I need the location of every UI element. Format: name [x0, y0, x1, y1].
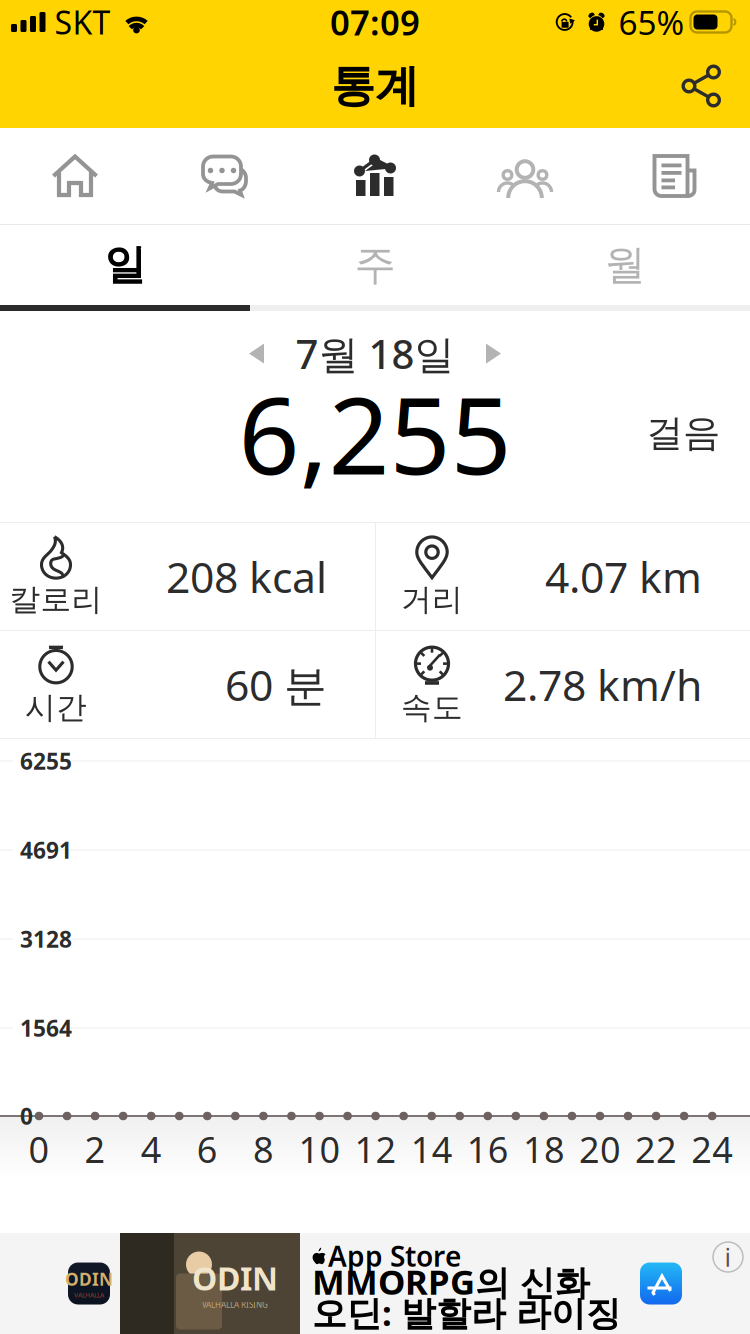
staticText: 2.78 km/h	[503, 656, 702, 713]
staticText: 16	[467, 1125, 509, 1173]
staticText: 208 kcal	[166, 548, 327, 605]
staticText: 24	[691, 1125, 733, 1173]
staticText: 7월 18일	[295, 327, 454, 380]
button[interactable]: 일	[0, 225, 250, 305]
staticText: 14	[411, 1125, 453, 1173]
staticText: SKT	[54, 1, 110, 43]
button[interactable]: 주	[250, 225, 500, 305]
staticText: 12	[355, 1125, 397, 1173]
staticText: 10	[298, 1125, 340, 1173]
button[interactable]: Next day	[465, 331, 522, 377]
staticText: 60 분	[225, 656, 327, 713]
staticText: 칼로리	[9, 581, 102, 618]
staticText: 1564	[20, 1013, 72, 1043]
staticText: 시간	[25, 689, 87, 726]
button[interactable]: More	[600, 128, 750, 224]
staticText: 6,255	[238, 362, 511, 504]
staticText: 4.07 km	[545, 548, 702, 605]
staticText: 6	[197, 1125, 218, 1173]
staticText: 07:09	[330, 0, 420, 45]
button[interactable]: Share	[672, 54, 732, 118]
staticText: MMORPG의 신화	[312, 1258, 590, 1305]
staticText: 4691	[20, 835, 72, 865]
button[interactable]: Friends	[450, 128, 600, 224]
staticText: 2	[85, 1125, 106, 1173]
staticText: 4	[141, 1125, 162, 1173]
staticText: VALHALLA	[74, 1291, 104, 1299]
staticText: App Store	[328, 1237, 461, 1275]
staticText: ODIN	[65, 1268, 113, 1291]
staticText: 3128	[20, 924, 72, 954]
staticText: 65%	[618, 0, 684, 44]
button[interactable]: App Store ad: ODIN Valhalla Rising	[0, 1233, 750, 1334]
staticText: 0	[20, 1101, 33, 1131]
staticText: 일	[104, 240, 145, 290]
staticText: 22	[635, 1125, 677, 1173]
staticText: 오딘: 발할라 라이징	[312, 1289, 621, 1334]
staticText: 걸음	[646, 410, 720, 456]
staticText: 0	[28, 1125, 49, 1173]
button[interactable]: 월	[500, 225, 750, 305]
staticText: 6255	[20, 746, 72, 776]
staticText: 속도	[401, 689, 463, 726]
staticText: 20	[579, 1125, 621, 1173]
button[interactable]: Previous day	[228, 331, 285, 377]
button[interactable]: Chats	[150, 128, 300, 224]
button[interactable]: Home	[0, 128, 150, 224]
staticText: 18	[523, 1125, 565, 1173]
staticText: 통계	[331, 59, 419, 113]
staticText: 주	[354, 240, 395, 290]
staticText: i	[724, 1240, 731, 1274]
staticText: 월	[604, 240, 645, 290]
staticText: 8	[253, 1125, 274, 1173]
staticText: 거리	[401, 581, 463, 618]
staticText: VALHALLA RISING	[202, 1299, 268, 1310]
button[interactable]: Ad information	[711, 1240, 745, 1274]
staticText: ODIN	[192, 1257, 278, 1299]
button[interactable]: Statistics	[300, 128, 450, 224]
